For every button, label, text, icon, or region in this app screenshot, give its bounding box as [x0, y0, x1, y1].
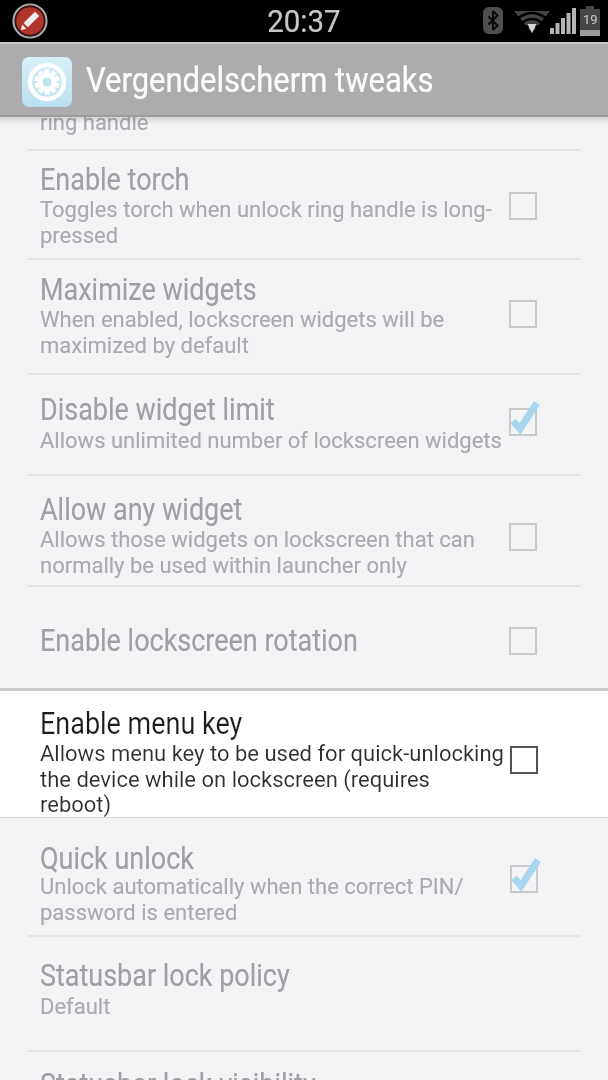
staticText: Disable widget limit — [40, 391, 275, 427]
staticText: ring handle — [40, 110, 149, 136]
staticText: Statusbar lock policy — [40, 957, 291, 993]
staticText: 20:37 — [267, 2, 341, 40]
button[interactable] — [0, 691, 608, 817]
staticText: Statusbar lock visibility — [40, 1066, 316, 1080]
button[interactable] — [0, 372, 608, 470]
staticText: Toggles torch when unlock ring handle is… — [40, 197, 492, 248]
staticText: Allows menu key to be used for quick-unl… — [40, 741, 504, 817]
staticText: Allows unlimited number of lockscreen wi… — [40, 428, 502, 454]
staticText: Allow any widget — [40, 491, 243, 527]
staticText: Quick unlock — [40, 840, 194, 876]
staticText: Allows those widgets on lockscreen that … — [40, 527, 475, 578]
button[interactable] — [0, 264, 608, 370]
button[interactable] — [0, 472, 608, 590]
staticText: Unlock automatically when the correct PI… — [40, 874, 464, 925]
staticText: Maximize widgets — [40, 271, 257, 307]
button[interactable] — [0, 140, 608, 262]
staticText: When enabled, lockscreen widgets will be… — [40, 307, 445, 358]
staticText: Enable menu key — [40, 705, 243, 741]
staticText: Vergendelscherm tweaks — [86, 60, 434, 101]
button[interactable] — [0, 818, 608, 938]
button[interactable] — [0, 592, 608, 686]
button[interactable] — [0, 940, 608, 1038]
staticText: Enable lockscreen rotation — [40, 622, 358, 658]
staticText: Default — [40, 994, 111, 1020]
staticText: 19 — [583, 12, 598, 27]
staticText: Enable torch — [40, 161, 190, 197]
